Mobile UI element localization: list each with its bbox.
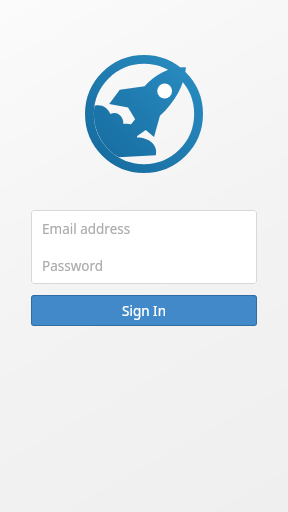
button[interactable]: Password xyxy=(31,247,257,284)
button[interactable]: Email address xyxy=(31,210,257,247)
other: App logo xyxy=(85,55,203,173)
staticText: Email address xyxy=(42,220,131,238)
staticText: Sign In xyxy=(122,302,166,320)
button[interactable]: Sign In xyxy=(31,295,257,326)
staticText: Password xyxy=(42,257,104,275)
